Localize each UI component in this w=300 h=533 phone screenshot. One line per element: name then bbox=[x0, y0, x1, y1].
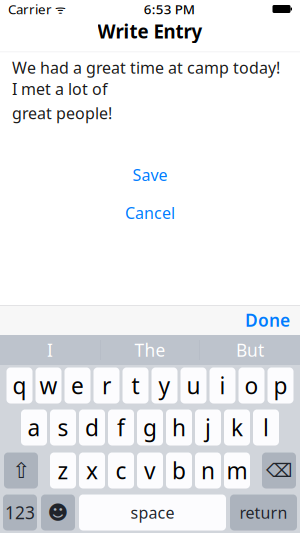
staticText: Save bbox=[132, 164, 167, 185]
button[interactable]: g bbox=[137, 409, 163, 445]
staticText: 123 bbox=[5, 501, 35, 524]
button[interactable]: w bbox=[35, 367, 61, 403]
staticText: We had a great time at camp today! I met… bbox=[12, 57, 284, 99]
staticText: k bbox=[231, 412, 243, 442]
button[interactable]: p bbox=[267, 367, 293, 403]
button[interactable]: But bbox=[200, 335, 300, 365]
staticText: ☻ bbox=[47, 501, 68, 524]
button[interactable]: a bbox=[21, 409, 47, 445]
staticText: o bbox=[244, 370, 258, 400]
button[interactable]: f bbox=[108, 409, 134, 445]
button[interactable]: i bbox=[209, 367, 235, 403]
button[interactable]: Emoji bbox=[41, 494, 75, 530]
button[interactable]: n bbox=[195, 452, 221, 488]
button[interactable]: y bbox=[151, 367, 177, 403]
button[interactable]: r bbox=[93, 367, 119, 403]
button[interactable]: o bbox=[238, 367, 264, 403]
button[interactable]: I bbox=[0, 335, 100, 365]
button[interactable]: l bbox=[253, 409, 279, 445]
button[interactable]: x bbox=[79, 452, 105, 488]
staticText: z bbox=[57, 455, 68, 485]
staticText: e bbox=[71, 370, 84, 400]
staticText: m bbox=[226, 455, 247, 485]
button[interactable]: t bbox=[122, 367, 148, 403]
staticText: y bbox=[158, 370, 170, 400]
button[interactable]: 123 bbox=[3, 494, 37, 530]
staticText: x bbox=[86, 455, 98, 485]
staticText: But bbox=[236, 338, 264, 361]
button[interactable]: Done bbox=[235, 305, 300, 335]
staticText: r bbox=[102, 370, 111, 400]
staticText: g bbox=[143, 412, 157, 442]
button[interactable]: j bbox=[195, 409, 221, 445]
button[interactable]: h bbox=[166, 409, 192, 445]
staticText: a bbox=[27, 412, 40, 442]
button[interactable]: The bbox=[100, 335, 199, 365]
button[interactable]: space bbox=[79, 494, 226, 530]
staticText: d bbox=[85, 412, 99, 442]
button[interactable]: return bbox=[230, 494, 297, 530]
staticText: ⌫ bbox=[266, 460, 292, 481]
staticText: l bbox=[263, 412, 269, 442]
staticText: j bbox=[205, 412, 211, 442]
staticText: I bbox=[47, 338, 53, 361]
button[interactable]: Cancel bbox=[105, 204, 195, 222]
staticText: h bbox=[172, 412, 186, 442]
staticText: i bbox=[219, 370, 225, 400]
staticText: w bbox=[39, 370, 57, 400]
staticText: n bbox=[201, 455, 215, 485]
button[interactable]: Shift bbox=[4, 452, 38, 488]
button[interactable]: m bbox=[224, 452, 250, 488]
button[interactable]: b bbox=[166, 452, 192, 488]
button[interactable]: q bbox=[6, 367, 32, 403]
button[interactable]: e bbox=[64, 367, 90, 403]
staticText: c bbox=[115, 455, 126, 485]
button[interactable]: v bbox=[137, 452, 163, 488]
staticText: great people! bbox=[12, 102, 112, 124]
staticText: s bbox=[57, 412, 68, 442]
button[interactable]: c bbox=[108, 452, 134, 488]
staticText: q bbox=[12, 370, 26, 400]
staticText: Cancel bbox=[125, 202, 175, 223]
staticText: return bbox=[239, 502, 287, 523]
staticText: space bbox=[130, 502, 174, 523]
staticText: f bbox=[117, 412, 125, 442]
staticText: ⇧ bbox=[12, 458, 30, 483]
staticText: v bbox=[144, 455, 156, 485]
staticText: u bbox=[186, 370, 200, 400]
staticText: 6:53 PM bbox=[144, 0, 195, 18]
staticText: t bbox=[131, 370, 139, 400]
staticText: Write Entry bbox=[97, 19, 202, 44]
staticText: Carrier bbox=[8, 0, 52, 18]
staticText: b bbox=[172, 455, 186, 485]
button[interactable]: z bbox=[50, 452, 76, 488]
button[interactable]: d bbox=[79, 409, 105, 445]
button[interactable]: Delete bbox=[262, 452, 296, 488]
button[interactable]: u bbox=[180, 367, 206, 403]
button[interactable]: Save bbox=[105, 166, 195, 184]
button[interactable]: k bbox=[224, 409, 250, 445]
staticText: Done bbox=[245, 308, 290, 331]
staticText: The bbox=[134, 338, 165, 361]
button[interactable]: s bbox=[50, 409, 76, 445]
staticText: p bbox=[273, 370, 287, 400]
staticText: ᯤ bbox=[52, 1, 66, 17]
